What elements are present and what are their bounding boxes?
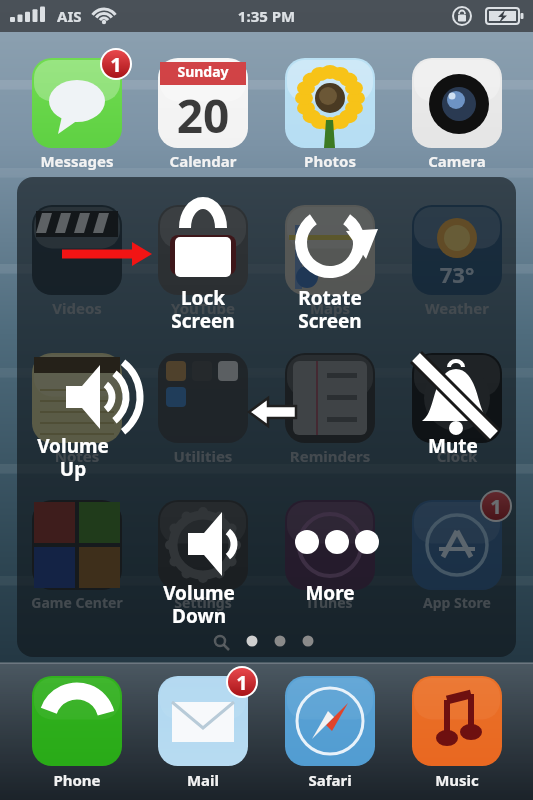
- staticText: 1: [226, 669, 258, 695]
- staticText: Camera: [394, 151, 520, 173]
- staticText: Messages: [14, 151, 140, 173]
- staticText: Music: [394, 770, 520, 794]
- staticText: Settings: [140, 593, 266, 615]
- staticText: Reminders: [267, 446, 393, 468]
- staticText: iTunes: [267, 593, 393, 615]
- button[interactable]: [17, 177, 516, 657]
- staticText: Clock: [394, 446, 520, 468]
- staticText: Sunday: [158, 62, 248, 85]
- staticText: Volume Down: [132, 580, 266, 650]
- button[interactable]: Music: [394, 770, 520, 794]
- staticText: Weather: [394, 298, 520, 320]
- button[interactable]: Lock Screen: [136, 271, 270, 341]
- staticText: 1:35 PM: [0, 6, 533, 26]
- staticText: Game Center: [14, 593, 140, 615]
- button[interactable]: Mail: [140, 770, 266, 794]
- staticText: Calendar: [140, 151, 266, 173]
- staticText: Lock Screen: [136, 285, 270, 355]
- button[interactable]: Mute: [386, 419, 520, 489]
- staticText: Maps: [267, 298, 393, 320]
- button[interactable]: Rotate Screen: [263, 271, 397, 341]
- staticText: Rotate Screen: [263, 285, 397, 355]
- staticText: AIS: [57, 6, 82, 26]
- staticText: Notes: [14, 446, 140, 468]
- staticText: Mute: [386, 433, 520, 503]
- staticText: Volume Up: [6, 433, 140, 503]
- staticText: Videos: [14, 298, 140, 320]
- staticText: 1: [480, 493, 512, 519]
- button[interactable]: More: [263, 566, 397, 636]
- staticText: App Store: [394, 593, 520, 615]
- button[interactable]: Volume Up: [6, 419, 140, 489]
- staticText: 1: [100, 51, 132, 77]
- button[interactable]: Safari: [267, 770, 393, 794]
- staticText: Utilities: [140, 446, 266, 468]
- button[interactable]: Phone: [14, 770, 140, 794]
- staticText: Phone: [14, 770, 140, 794]
- staticText: Safari: [267, 770, 393, 794]
- button[interactable]: Volume Down: [132, 566, 266, 636]
- staticText: YouTube: [140, 298, 266, 320]
- staticText: Mail: [140, 770, 266, 794]
- staticText: 73°: [412, 259, 502, 289]
- staticText: 20: [158, 84, 248, 144]
- staticText: Photos: [267, 151, 393, 173]
- staticText: More: [263, 580, 397, 650]
